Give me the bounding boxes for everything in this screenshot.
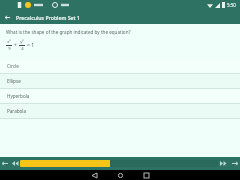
button[interactable]: Back — [81, 170, 107, 180]
staticText: 4 — [21, 46, 24, 52]
staticText: + — [14, 42, 17, 49]
staticText: 5:50 — [227, 2, 236, 8]
button[interactable]: Ellipse — [0, 74, 240, 88]
staticText: Circle — [7, 63, 19, 69]
button[interactable]: Rewind — [10, 157, 20, 170]
staticText: What is the shape of the graph indicated… — [6, 29, 131, 35]
button[interactable]: Next section — [229, 157, 240, 170]
button[interactable]: Fast forward — [218, 157, 229, 170]
staticText: = 1 — [27, 42, 35, 49]
staticText: 9 — [8, 46, 11, 52]
staticText: Ellipse — [7, 78, 21, 84]
button[interactable]: Recent apps — [133, 170, 159, 180]
staticText: x² — [7, 39, 11, 45]
button[interactable]: Circle — [0, 59, 240, 73]
staticText: Precalculus Problem Set 1 — [16, 14, 80, 21]
button[interactable]: Hyperbola — [0, 89, 240, 103]
staticText: y² — [20, 39, 24, 45]
button[interactable]: Parabola — [0, 104, 240, 118]
button[interactable]: Previous section — [0, 157, 10, 170]
button[interactable] — [20, 160, 218, 167]
button[interactable]: Back — [0, 10, 14, 24]
button[interactable]: Home — [107, 170, 133, 180]
staticText: Hyperbola — [7, 93, 30, 99]
staticText: Parabola — [7, 108, 27, 114]
